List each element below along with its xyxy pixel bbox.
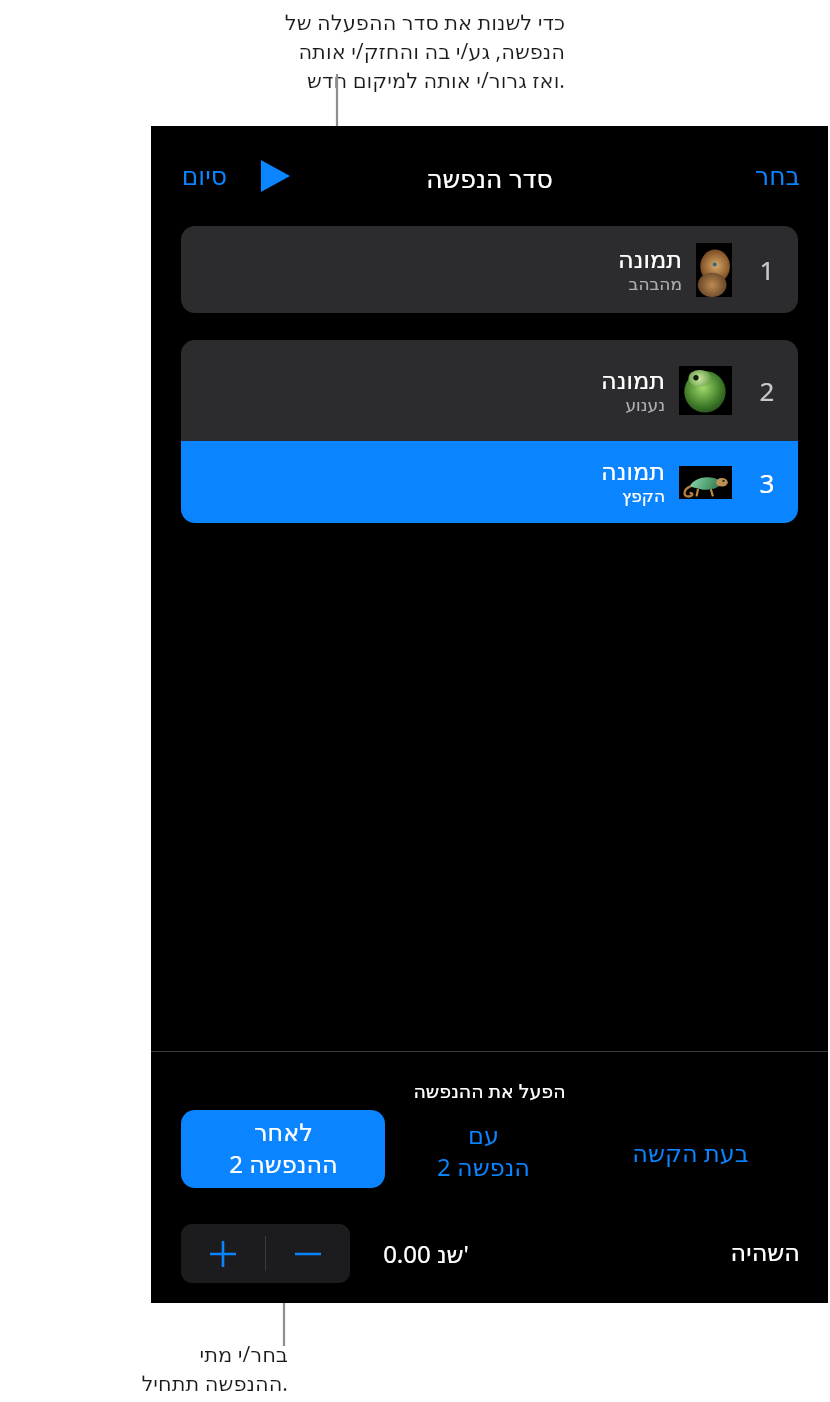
staticText: ההנפשה תתחיל.	[141, 1369, 288, 1398]
staticText: 0.00 שנ'	[383, 1237, 469, 1270]
button[interactable]: עם	[413, 1114, 553, 1190]
button[interactable]: Increase delay	[181, 1224, 265, 1283]
staticText: נענוע	[625, 395, 665, 415]
staticText: בעת הקשה	[632, 1136, 749, 1169]
staticText: סיום	[181, 162, 227, 191]
staticText: 1	[754, 252, 780, 287]
staticText: מהבהב	[628, 274, 682, 294]
button[interactable]: Play	[251, 152, 299, 200]
staticText: הנפשה, גע/י בה והחזק/י אותה	[298, 37, 565, 66]
button[interactable]: תמונה	[181, 441, 798, 523]
staticText: תמונה	[618, 246, 682, 274]
staticText: 2	[754, 373, 780, 408]
button[interactable]: תמונה	[181, 226, 798, 313]
staticText: השהיה	[730, 1239, 800, 1267]
staticText: תמונה	[601, 367, 665, 395]
staticText: סדר הנפשה	[426, 161, 553, 195]
button[interactable]: בעת הקשה	[610, 1126, 770, 1178]
staticText: 3	[754, 465, 780, 500]
button[interactable]: Decrease delay	[266, 1224, 350, 1283]
staticText: כדי לשנות את סדר ההפעלה של	[284, 8, 565, 37]
staticText: בחר	[755, 162, 800, 191]
staticText: עם	[468, 1122, 499, 1150]
button[interactable]: תמונה	[181, 340, 798, 441]
staticText: בחר/י מתי	[199, 1340, 288, 1369]
button[interactable]: סיום	[173, 156, 235, 197]
staticText: ואז גרור/י אותה למיקום חדש.	[307, 66, 565, 95]
staticText: ההנפשה 2	[229, 1147, 338, 1180]
staticText: הנפשה 2	[437, 1150, 530, 1183]
button[interactable]: בחר	[747, 156, 808, 197]
staticText: לאחר	[254, 1119, 313, 1147]
staticText: תמונה	[601, 458, 665, 486]
staticText: הקפץ	[622, 486, 665, 506]
button[interactable]: לאחר	[181, 1110, 385, 1188]
staticText: הפעל את ההנפשה	[151, 1078, 828, 1104]
